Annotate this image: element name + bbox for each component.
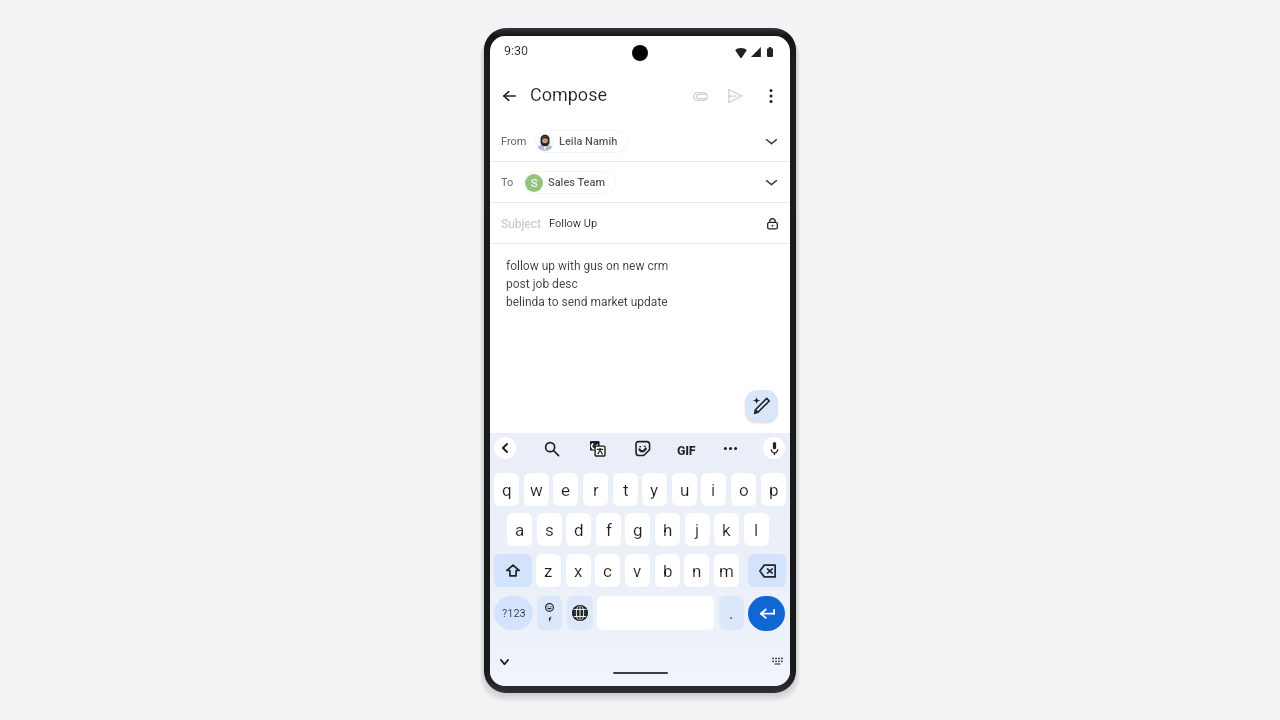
staticText: Compose xyxy=(530,84,607,105)
button[interactable]: Shift xyxy=(494,554,532,587)
button[interactable]: Attach file xyxy=(682,78,718,114)
staticText: ?123 xyxy=(502,607,526,620)
button[interactable]: f xyxy=(596,513,621,546)
button[interactable]: Hide keyboard xyxy=(493,651,515,673)
staticText: From xyxy=(501,135,527,148)
staticText: h xyxy=(663,520,673,540)
button[interactable]: p xyxy=(761,473,786,506)
button[interactable]: To xyxy=(490,162,790,203)
staticText: 9:30 xyxy=(504,43,529,58)
staticText: u xyxy=(680,480,690,500)
staticText: i xyxy=(711,480,716,500)
staticText: l xyxy=(754,520,759,540)
button[interactable]: More options xyxy=(753,78,789,114)
staticText: follow up with gus on new crm xyxy=(506,259,669,273)
button[interactable]: Send xyxy=(717,78,753,114)
button[interactable]: Collapse toolbar xyxy=(494,437,516,459)
button[interactable]: k xyxy=(714,513,739,546)
button[interactable]: Backspace xyxy=(748,554,786,587)
button[interactable]: Keyboard settings xyxy=(766,650,788,672)
staticText: m xyxy=(719,561,734,581)
button[interactable]: From xyxy=(490,121,790,162)
button[interactable]: Enter xyxy=(748,596,785,631)
staticText: k xyxy=(722,520,731,540)
staticText: r xyxy=(593,480,599,500)
button[interactable]: x xyxy=(566,554,591,587)
staticText: j xyxy=(695,520,700,540)
button[interactable]: u xyxy=(672,473,697,506)
staticText: t xyxy=(623,480,629,500)
button[interactable]: Voice input xyxy=(763,437,785,459)
button[interactable]: d xyxy=(566,513,591,546)
staticText: w xyxy=(530,480,543,500)
staticText: belinda to send market update xyxy=(506,295,668,309)
staticText: o xyxy=(739,480,749,500)
staticText: f xyxy=(606,520,612,540)
button[interactable]: m xyxy=(714,554,739,587)
button[interactable]: v xyxy=(625,554,650,587)
button[interactable]: j xyxy=(685,513,710,546)
button[interactable]: . xyxy=(719,596,744,630)
staticText: Sales Team xyxy=(548,176,606,189)
button[interactable]: Help me write xyxy=(746,390,777,421)
staticText: g xyxy=(633,520,643,540)
staticText: q xyxy=(502,480,512,500)
button[interactable]: l xyxy=(744,513,769,546)
button[interactable]: Search xyxy=(539,436,563,460)
staticText: y xyxy=(650,480,659,500)
button[interactable]: h xyxy=(655,513,680,546)
button[interactable]: s xyxy=(537,513,562,546)
button[interactable]: r xyxy=(583,473,608,506)
staticText: v xyxy=(633,561,642,581)
staticText: Subject xyxy=(501,217,541,231)
button[interactable]: w xyxy=(524,473,549,506)
button[interactable]: g xyxy=(625,513,650,546)
staticText: z xyxy=(544,561,553,581)
staticText: s xyxy=(545,520,554,540)
staticText: n xyxy=(692,561,702,581)
button[interactable]: a xyxy=(507,513,532,546)
button[interactable]: Change language xyxy=(567,596,593,630)
staticText: x xyxy=(574,561,583,581)
button[interactable]: n xyxy=(684,554,709,587)
button[interactable]: Translate xyxy=(585,436,609,460)
button[interactable]: Back xyxy=(490,77,528,115)
button[interactable]: e xyxy=(553,473,578,506)
button[interactable]: z xyxy=(536,554,561,587)
staticText: c xyxy=(603,561,612,581)
staticText: d xyxy=(574,520,584,540)
staticText: GIF xyxy=(677,443,696,458)
staticText: Leila Namih xyxy=(559,135,618,148)
staticText: b xyxy=(663,561,673,581)
button[interactable]: Stickers xyxy=(630,436,654,460)
button[interactable]: Subject xyxy=(490,203,790,244)
staticText: e xyxy=(561,480,571,500)
button[interactable]: q xyxy=(494,473,519,506)
button[interactable]: o xyxy=(731,473,756,506)
staticText: . xyxy=(729,603,734,623)
button[interactable]: c xyxy=(595,554,620,587)
button[interactable]: GIF xyxy=(674,438,698,462)
button[interactable]: t xyxy=(613,473,638,506)
staticText: To xyxy=(501,176,514,189)
button[interactable]: i xyxy=(701,473,726,506)
button[interactable]: y xyxy=(642,473,667,506)
button[interactable]: More options xyxy=(718,436,742,460)
button[interactable]: Emoji xyxy=(537,596,562,630)
staticText: p xyxy=(769,480,779,500)
button[interactable]: ?123 xyxy=(494,596,533,630)
staticText: S xyxy=(531,177,538,190)
button[interactable]: b xyxy=(655,554,680,587)
staticText: post job desc xyxy=(506,277,578,291)
staticText: a xyxy=(515,520,525,540)
staticText: Follow Up xyxy=(549,217,598,230)
